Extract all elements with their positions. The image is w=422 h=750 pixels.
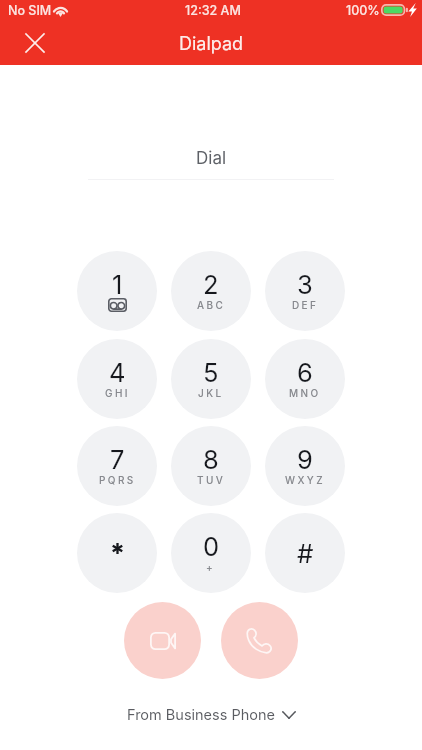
- button[interactable]: 7: [77, 426, 157, 506]
- staticText: PQRS: [99, 474, 136, 486]
- staticText: 8: [203, 444, 219, 475]
- button[interactable]: #: [265, 513, 345, 593]
- staticText: WXYZ: [285, 474, 326, 486]
- staticText: 3: [297, 269, 313, 300]
- staticText: MNO: [289, 387, 321, 399]
- button[interactable]: Video call: [124, 602, 201, 679]
- staticText: 2: [203, 269, 219, 300]
- button[interactable]: 1: [77, 251, 157, 331]
- staticText: 0: [203, 531, 220, 562]
- staticText: DEF: [292, 299, 319, 311]
- staticText: 4: [109, 357, 126, 388]
- staticText: ABC: [197, 299, 226, 311]
- staticText: #: [297, 538, 314, 569]
- button[interactable]: 9: [265, 426, 345, 506]
- button[interactable]: 6: [265, 339, 345, 419]
- button[interactable]: 3: [265, 251, 345, 331]
- button[interactable]: 5: [171, 339, 251, 419]
- staticText: Dialpad: [179, 33, 244, 55]
- staticText: No SIM: [8, 3, 52, 18]
- button[interactable]: 4: [77, 339, 157, 419]
- button[interactable]: 0: [171, 513, 251, 593]
- button[interactable]: [77, 513, 157, 593]
- staticText: 7: [110, 444, 125, 475]
- staticText: JKL: [198, 387, 224, 399]
- button[interactable]: Call: [221, 602, 298, 679]
- button[interactable]: Close: [11, 19, 59, 67]
- staticText: GHI: [105, 387, 130, 399]
- staticText: 12:32 AM: [185, 3, 241, 18]
- staticText: +: [206, 561, 216, 573]
- staticText: TUV: [197, 474, 226, 486]
- button[interactable]: 8: [171, 426, 251, 506]
- staticText: Dial: [196, 148, 227, 169]
- button[interactable]: From Business Phone: [127, 706, 296, 724]
- staticText: 100%: [346, 3, 380, 18]
- staticText: 1: [112, 269, 123, 300]
- staticText: From Business Phone: [127, 706, 276, 724]
- staticText: 5: [203, 357, 219, 388]
- button[interactable]: 2: [171, 251, 251, 331]
- staticText: 9: [297, 444, 313, 475]
- staticText: 6: [297, 357, 313, 388]
